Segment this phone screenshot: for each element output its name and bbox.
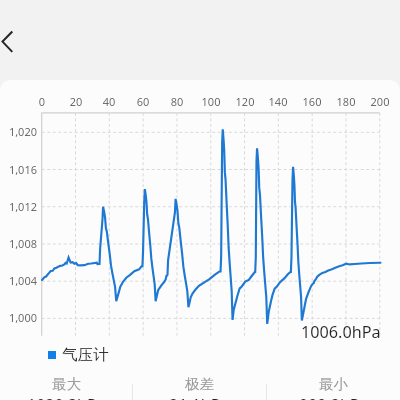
staticText: 21.1hPa [169,394,230,400]
staticText: 20 [56,94,96,109]
staticText: 60 [123,94,163,109]
staticText: 1,012 [2,199,37,214]
staticText: 1,016 [2,162,37,177]
staticText: 999.2hPa [299,394,369,400]
staticText: 1006.0hPa [301,321,381,343]
button[interactable]: Back [0,20,42,62]
staticText: 200 [360,94,400,109]
staticText: 1,004 [2,273,37,288]
staticText: 气压计 [62,345,109,365]
staticText: 140 [258,94,298,109]
staticText: 160 [292,94,332,109]
staticText: 180 [326,94,366,109]
staticText: 0 [22,94,62,109]
staticText: 1,000 [2,310,37,325]
staticText: 1,008 [2,236,37,251]
staticText: 最小 [319,375,348,393]
staticText: 最大 [52,375,81,393]
staticText: 100 [191,94,231,109]
staticText: 80 [157,94,197,109]
staticText: 40 [89,94,129,109]
staticText: 120 [225,94,265,109]
staticText: 1,020 [2,124,37,139]
staticText: 极差 [185,375,214,393]
staticText: 1020.3hPa [27,394,106,400]
button[interactable]: 气压计 [48,345,109,365]
